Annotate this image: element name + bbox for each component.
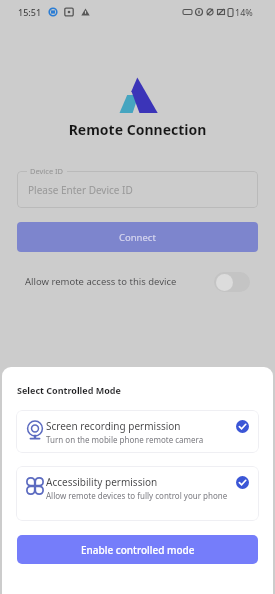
staticText: Screen recording permission bbox=[46, 419, 181, 433]
staticText: Device ID bbox=[30, 166, 64, 176]
staticText: Accessibility permission bbox=[46, 475, 158, 489]
staticText: 15:51 bbox=[18, 6, 42, 18]
button[interactable]: Connect bbox=[17, 222, 258, 252]
button[interactable]: Please Enter Device ID bbox=[17, 171, 258, 208]
staticText: 14% bbox=[235, 6, 253, 18]
staticText: Turn on the mobile phone remote camera bbox=[46, 434, 204, 445]
button[interactable]: Enable controlled mode bbox=[17, 535, 258, 564]
staticText: Select Controlled Mode bbox=[17, 384, 121, 396]
button[interactable]: Screen recording permission bbox=[16, 410, 259, 453]
staticText: Enable controlled mode bbox=[81, 543, 195, 557]
button[interactable]: Accessibility permission bbox=[16, 466, 259, 521]
button[interactable]: Allow remote access to this device bbox=[214, 272, 250, 292]
staticText: Allow remote devices to fully control yo… bbox=[46, 490, 228, 501]
staticText: Please Enter Device ID bbox=[28, 183, 133, 197]
staticText: Remote Connection bbox=[0, 120, 275, 139]
staticText: Connect bbox=[119, 231, 156, 244]
staticText: Allow remote access to this device bbox=[25, 275, 177, 288]
